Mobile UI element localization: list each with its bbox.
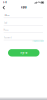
button[interactable]: Back [2, 5, 6, 10]
staticText: Sign Up [20, 6, 26, 9]
button[interactable]: Forgot Password? [32, 40, 44, 42]
staticText: Email [4, 22, 7, 24]
staticText: Sign Up [20, 52, 27, 54]
button[interactable]: Sign Up [8, 49, 39, 56]
staticText: Forgot Password? [32, 40, 44, 42]
staticText: Phone [4, 29, 9, 31]
staticText: Password [4, 37, 12, 39]
staticText: 9:41 [3, 1, 7, 4]
staticText: Full Name [4, 14, 10, 16]
